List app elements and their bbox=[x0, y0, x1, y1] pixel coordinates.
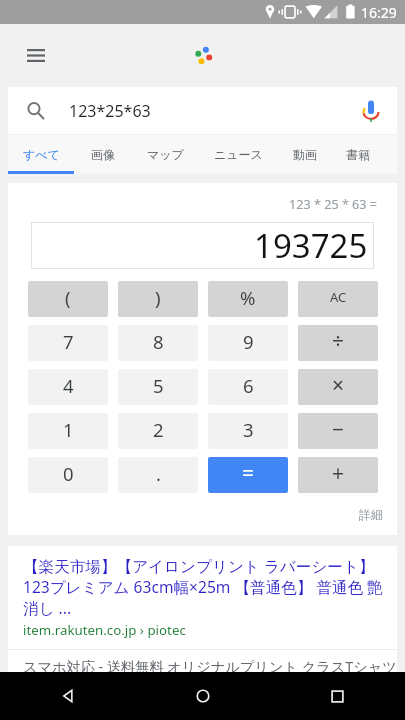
button[interactable]: 3 bbox=[208, 413, 288, 449]
button[interactable]: ÷ bbox=[298, 325, 378, 361]
staticText: 0 bbox=[63, 461, 74, 486]
button[interactable]: 123*25*63 bbox=[8, 87, 397, 134]
button[interactable]: 9 bbox=[208, 325, 288, 361]
staticText: 3 bbox=[243, 417, 254, 442]
button[interactable]: 6 bbox=[208, 369, 288, 405]
button[interactable]: Menu bbox=[12, 31, 60, 79]
button[interactable]: 4 bbox=[28, 369, 108, 405]
staticText: ) bbox=[155, 285, 161, 310]
staticText: % bbox=[240, 285, 256, 310]
button[interactable]: 【楽天市場】【アイロンプリント ラバーシート】 123プレミアム 63cm幅×2… bbox=[8, 546, 397, 649]
staticText: = bbox=[242, 459, 255, 488]
staticText: 8 bbox=[153, 329, 164, 354]
button[interactable]: 1 bbox=[28, 413, 108, 449]
staticText: AC bbox=[330, 288, 347, 306]
staticText: 16:29 bbox=[361, 3, 397, 22]
staticText: ( bbox=[65, 285, 71, 310]
button[interactable]: = bbox=[208, 457, 288, 493]
staticText: 7 bbox=[63, 329, 74, 354]
staticText: 6 bbox=[243, 373, 254, 398]
staticText: ÷ bbox=[332, 327, 345, 356]
button[interactable]: 5 bbox=[118, 369, 198, 405]
staticText: スマホ対応 - 送料無料 オリジナルプリント クラスTシャツ bbox=[23, 657, 397, 676]
button[interactable]: Back bbox=[0, 672, 135, 720]
button[interactable]: Home bbox=[135, 672, 270, 720]
button[interactable]: 画像 bbox=[74, 135, 132, 174]
button[interactable]: % bbox=[208, 281, 288, 317]
button[interactable]: すべて bbox=[8, 135, 74, 174]
staticText: 画像 bbox=[91, 147, 115, 162]
button[interactable]: 7 bbox=[28, 325, 108, 361]
staticText: 【楽天市場】【アイロンプリント ラバーシート】 123プレミアム 63cm幅×2… bbox=[23, 555, 383, 619]
staticText: 123*25*63 bbox=[69, 100, 151, 122]
button[interactable]: ( bbox=[28, 281, 108, 317]
button[interactable]: スマホ対応 - 送料無料 オリジナルプリント クラスTシャツ bbox=[8, 650, 397, 686]
button[interactable]: + bbox=[298, 457, 378, 493]
staticText: 9 bbox=[243, 329, 254, 354]
staticText: すべて bbox=[23, 147, 60, 162]
button[interactable]: 詳細 bbox=[8, 507, 397, 522]
button[interactable]: Voice search bbox=[349, 89, 393, 133]
staticText: 1 bbox=[63, 417, 74, 442]
staticText: 動画 bbox=[293, 147, 317, 162]
button[interactable]: 2 bbox=[118, 413, 198, 449]
button[interactable]: − bbox=[298, 413, 378, 449]
button[interactable]: 動画 bbox=[278, 135, 332, 174]
staticText: − bbox=[332, 415, 345, 444]
staticText: 193725 bbox=[254, 223, 368, 268]
button[interactable]: 書籍 bbox=[332, 135, 384, 174]
staticText: . bbox=[156, 461, 161, 486]
staticText: 5 bbox=[153, 373, 164, 398]
staticText: 2 bbox=[153, 417, 164, 442]
staticText: マップ bbox=[147, 147, 184, 162]
button[interactable]: ) bbox=[118, 281, 198, 317]
staticText: 書籍 bbox=[346, 147, 370, 162]
button[interactable]: ニュース bbox=[198, 135, 278, 174]
button[interactable]: マップ bbox=[132, 135, 198, 174]
button[interactable]: 0 bbox=[28, 457, 108, 493]
staticText: × bbox=[332, 371, 345, 400]
button[interactable]: Google Assistant bbox=[190, 41, 216, 67]
button[interactable]: AC bbox=[298, 281, 378, 317]
button[interactable]: Recent apps bbox=[270, 672, 405, 720]
staticText: item.rakuten.co.jp › piotec bbox=[23, 621, 186, 639]
button[interactable]: . bbox=[118, 457, 198, 493]
staticText: 123 * 25 * 63 = bbox=[8, 196, 377, 213]
button[interactable]: × bbox=[298, 369, 378, 405]
staticText: + bbox=[332, 459, 345, 488]
staticText: ニュース bbox=[214, 147, 263, 162]
staticText: 4 bbox=[63, 373, 74, 398]
button[interactable]: 8 bbox=[118, 325, 198, 361]
